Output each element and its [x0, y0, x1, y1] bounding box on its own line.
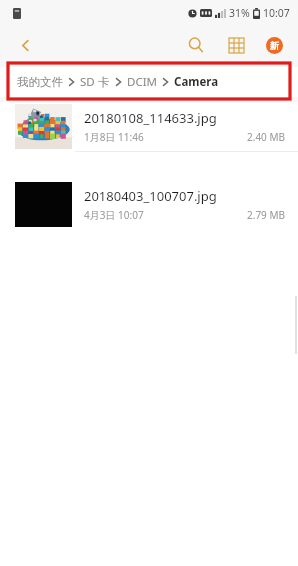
button[interactable]: Search — [180, 29, 212, 61]
staticText: 31% — [229, 6, 250, 20]
staticText: Camera — [174, 74, 219, 90]
button[interactable]: 20180108_114633.jpg — [0, 102, 298, 151]
staticText: 4月3日 10:07 — [84, 208, 144, 222]
button[interactable]: 20180403_100707.jpg — [0, 180, 298, 229]
staticText: DCIM — [127, 74, 157, 90]
staticText: 10:07 — [263, 6, 290, 20]
staticText: 2.79 MB — [247, 208, 286, 222]
staticText: SD 卡 — [80, 74, 110, 90]
button[interactable]: View mode — [220, 29, 252, 61]
button[interactable]: New — [258, 29, 290, 61]
staticText: 20180403_100707.jpg — [84, 187, 217, 205]
button[interactable]: 我的文件 — [17, 74, 219, 90]
staticText: 新 — [270, 40, 279, 51]
staticText: 我的文件 — [17, 75, 63, 89]
staticText: 2.40 MB — [247, 130, 286, 144]
staticText: 1月8日 11:46 — [84, 130, 144, 144]
button[interactable]: Back — [10, 30, 40, 60]
staticText: 20180108_114633.jpg — [84, 109, 217, 127]
